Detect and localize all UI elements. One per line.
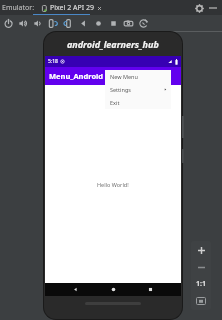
button[interactable]: Screenshot: [121, 15, 136, 32]
button[interactable]: Back: [69, 283, 82, 296]
button[interactable]: Zoom out: [191, 259, 211, 275]
button[interactable]: Rotate left: [46, 15, 61, 32]
button[interactable]: Zoom in: [191, 241, 211, 259]
button[interactable]: Home: [91, 15, 106, 32]
staticText: Hello World!: [97, 181, 129, 188]
button[interactable]: Zoom to fit: [191, 292, 211, 310]
staticText: android_learners_hub: [67, 38, 159, 50]
button[interactable]: Overview: [106, 15, 121, 32]
button[interactable]: New Menu: [105, 70, 171, 83]
button[interactable]: Exit: [105, 96, 171, 109]
button[interactable]: Actual size: [191, 275, 211, 292]
button[interactable]: Volume up: [16, 15, 31, 32]
button[interactable]: Settings: [192, 1, 206, 15]
staticText: New Menu: [110, 73, 138, 80]
staticText: 5:18: [48, 58, 58, 65]
button[interactable]: Back: [76, 15, 91, 32]
button[interactable]: Rotate right: [61, 15, 76, 32]
button[interactable]: Close tab: [97, 6, 102, 11]
staticText: Emulator:: [2, 3, 35, 13]
staticText: Exit: [110, 99, 120, 106]
button[interactable]: Minimize: [206, 1, 220, 15]
button[interactable]: Overview: [144, 283, 157, 296]
button[interactable]: Settings: [105, 83, 171, 96]
button[interactable]: Record: [136, 15, 151, 32]
staticText: 1:1: [196, 279, 206, 289]
button[interactable]: Power: [1, 15, 16, 32]
staticText: Settings: [110, 86, 131, 93]
staticText: Menu_Android: [49, 71, 104, 81]
button[interactable]: Pixel 2 API 29: [41, 0, 102, 15]
staticText: Pixel 2 API 29: [50, 3, 94, 13]
button[interactable]: Home: [107, 283, 120, 296]
button[interactable]: Volume down: [31, 15, 46, 32]
